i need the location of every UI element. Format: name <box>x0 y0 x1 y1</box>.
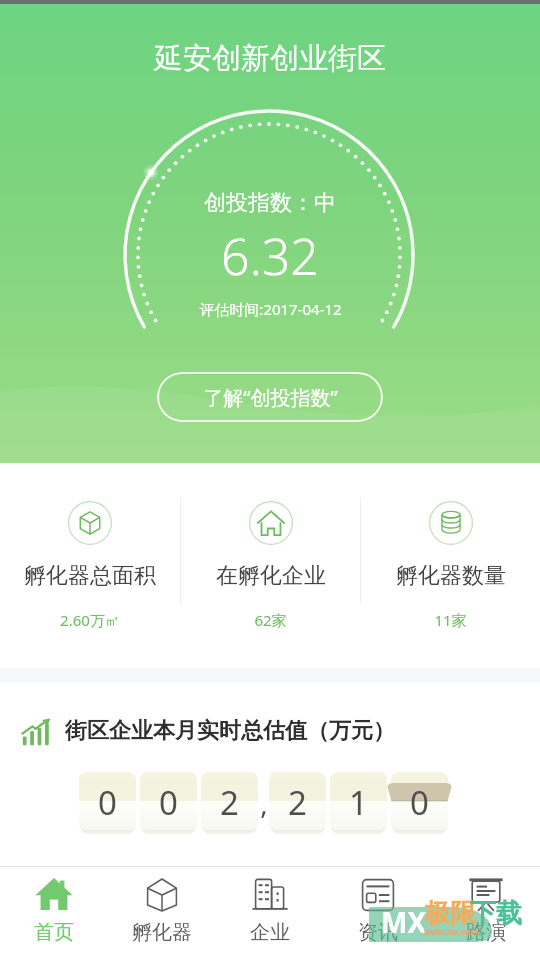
staticText: 0 <box>98 780 117 825</box>
staticText: 孵化器 <box>132 920 192 945</box>
staticText: 孵化器总面积 <box>24 562 156 590</box>
button[interactable]: 孵化器 <box>108 867 216 960</box>
staticText: 62家 <box>254 610 287 630</box>
staticText: 孵化器数量 <box>396 562 506 590</box>
staticText: 评估时间:2017-04-12 <box>199 299 342 319</box>
staticText: 资讯 <box>358 920 398 945</box>
staticText: 2 <box>220 780 239 825</box>
button[interactable]: 在孵化企业 <box>181 463 360 668</box>
staticText: 街区企业本月实时总估值（万元） <box>65 717 395 745</box>
staticText: 0 <box>159 780 178 825</box>
staticText: MX <box>381 903 427 941</box>
staticText: 下载 <box>470 897 522 930</box>
staticText: , <box>260 784 268 822</box>
button[interactable]: 首页 <box>0 867 108 960</box>
button[interactable]: 孵化器数量 <box>361 463 540 668</box>
button[interactable]: 资讯 <box>324 867 432 960</box>
staticText: 0 <box>410 780 429 825</box>
staticText: 了解“创投指数” <box>203 384 338 411</box>
staticText: 极限 <box>424 897 476 930</box>
other: Growth chart <box>17 711 57 751</box>
staticText: 2 <box>288 780 307 825</box>
staticText: 1 <box>349 780 368 825</box>
staticText: www.mx.com <box>424 926 479 937</box>
staticText: 延安创新创业街区 <box>154 40 386 77</box>
staticText: 首页 <box>34 920 74 945</box>
staticText: 企业 <box>250 920 290 945</box>
staticText: 路演 <box>466 920 506 945</box>
staticText: 6.32 <box>221 222 319 290</box>
staticText: 11家 <box>434 610 467 630</box>
button[interactable]: 孵化器总面积 <box>0 463 180 668</box>
button[interactable]: 企业 <box>216 867 324 960</box>
staticText: 在孵化企业 <box>216 562 326 590</box>
staticText: 创投指数：中 <box>204 189 336 217</box>
button[interactable]: 了解“创投指数” <box>157 372 383 422</box>
staticText: 2.60万㎡ <box>60 610 120 630</box>
button[interactable]: 路演 <box>432 867 540 960</box>
